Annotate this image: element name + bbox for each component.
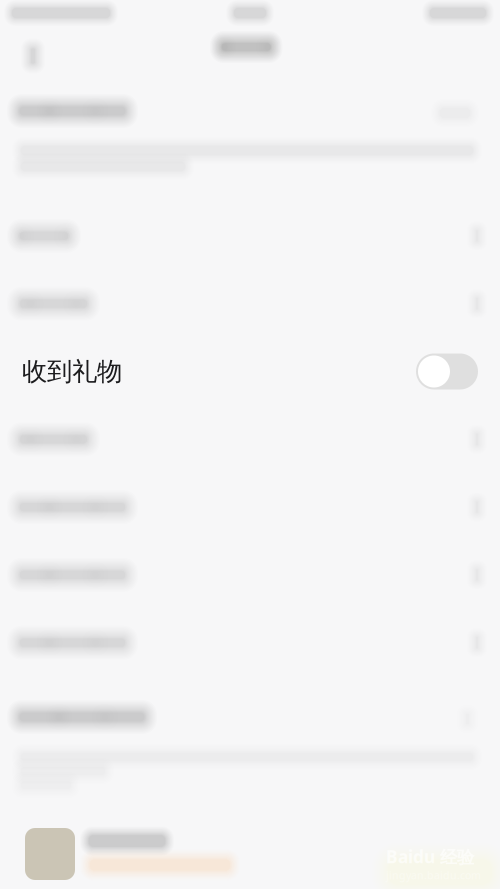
button[interactable]: Settings row [0, 541, 500, 609]
button[interactable]: 收到礼物 [0, 338, 500, 405]
staticText: 收到礼物 [22, 356, 122, 387]
button[interactable]: Settings row [0, 609, 500, 677]
button[interactable]: Settings row [0, 270, 500, 338]
button[interactable]: Settings row [0, 202, 500, 270]
button[interactable]: Settings row [0, 405, 500, 473]
button[interactable]: Settings row [0, 473, 500, 541]
button[interactable]: Back [4, 33, 62, 79]
button[interactable]: Featured app [0, 828, 500, 888]
staticText: Baidu 经验 [386, 845, 474, 868]
